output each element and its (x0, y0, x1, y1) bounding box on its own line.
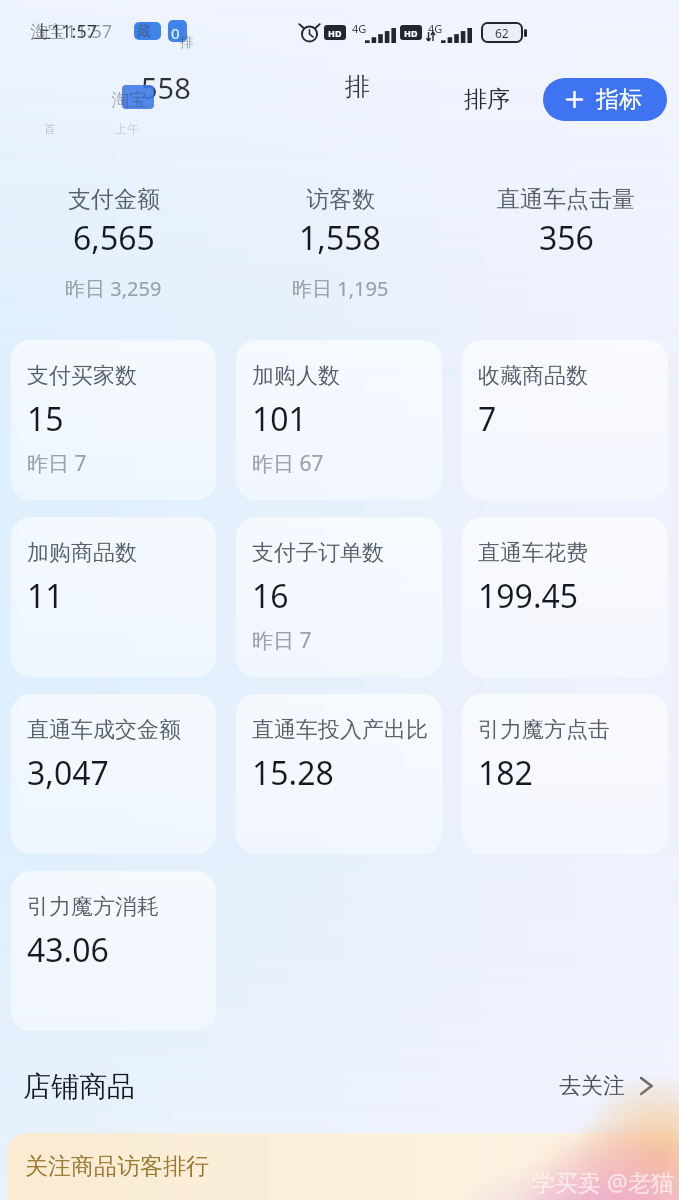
staticText: 356 (539, 216, 594, 260)
button[interactable]: 加购人数 (236, 340, 442, 500)
staticText: 淘宝11:57 (30, 19, 113, 44)
staticText: 4G (352, 21, 367, 36)
staticText: 11 (27, 574, 64, 618)
button[interactable]: 排序 (454, 77, 520, 122)
staticText: 支付买家数 (27, 362, 137, 390)
staticText: 排序 (464, 85, 510, 114)
staticText: 引力魔方消耗 (27, 893, 159, 921)
staticText: 15.28 (252, 751, 334, 795)
button[interactable]: 支付买家数 (11, 340, 216, 500)
staticText: 首 (44, 121, 56, 136)
staticText: 直通车投入产出比 (252, 716, 428, 744)
button[interactable]: 加购商品数 (11, 517, 216, 677)
button[interactable]: 直通车成交金额 (11, 694, 216, 854)
staticText: 指标 (596, 85, 642, 114)
staticText: 去关注 (559, 1072, 625, 1100)
staticText: 店铺商品 (23, 1069, 135, 1104)
button[interactable]: 直通车点击量 (453, 185, 679, 275)
staticText: 加购人数 (252, 362, 340, 390)
staticText: 淘宝 (111, 89, 147, 112)
staticText: 昨日 67 (252, 449, 324, 478)
staticText: 昨日 7 (252, 626, 312, 655)
staticText: 7 (478, 397, 497, 441)
staticText: 支付金额 (68, 185, 160, 214)
button[interactable]: 关注商品访客排行 (7, 1133, 679, 1200)
staticText: 16 (252, 574, 289, 618)
staticText: 直通车点击量 (497, 185, 635, 214)
button[interactable]: 收藏商品数 (462, 340, 668, 500)
staticText: HD (404, 27, 418, 39)
staticText: 昨日 7 (27, 449, 87, 478)
button[interactable]: 直通车花费 (462, 517, 668, 677)
staticText: 藏 (136, 22, 151, 41)
staticText: 关注商品访客排行 (25, 1152, 209, 1181)
button[interactable]: 访客数 (227, 185, 453, 302)
button[interactable]: 支付子订单数 (236, 517, 442, 677)
staticText: 62 (495, 25, 509, 41)
staticText: 排 (180, 34, 194, 52)
staticText: 3,047 (27, 751, 109, 795)
staticText: 直通车成交金额 (27, 716, 181, 744)
staticText: 支付子订单数 (252, 539, 384, 567)
staticText: 0 (171, 23, 180, 43)
button[interactable]: 去关注 (559, 1072, 653, 1100)
staticText: 昨日 3,259 (65, 275, 162, 302)
staticText: 加购商品数 (27, 539, 137, 567)
button[interactable]: 引力魔方点击 (462, 694, 668, 854)
staticText: 排 (345, 71, 370, 102)
staticText: 1,558 (299, 216, 381, 260)
staticText: 访客数 (306, 185, 375, 214)
staticText: 上11:57 (33, 19, 98, 44)
button[interactable]: 引力魔方消耗 (11, 871, 216, 1031)
staticText: 引力魔方点击 (478, 716, 610, 744)
staticText: 558 (141, 68, 191, 107)
staticText: 学买卖 @老猫 (532, 1166, 674, 1197)
staticText: 上午 (115, 121, 139, 136)
staticText: 101 (252, 397, 307, 441)
staticText: 4G (428, 21, 443, 36)
button[interactable]: 直通车投入产出比 (236, 694, 442, 854)
staticText: 收藏商品数 (478, 362, 588, 390)
staticText: 直通车花费 (478, 539, 588, 567)
staticText: 43.06 (27, 928, 109, 972)
staticText: 6,565 (73, 216, 155, 260)
staticText: 15 (27, 397, 64, 441)
staticText: 199.45 (478, 574, 579, 618)
staticText: HD (328, 27, 342, 39)
staticText: 182 (478, 751, 533, 795)
staticText: 昨日 1,195 (292, 275, 389, 302)
button[interactable]: 指标 (543, 78, 667, 121)
button[interactable]: 支付金额 (0, 185, 227, 302)
